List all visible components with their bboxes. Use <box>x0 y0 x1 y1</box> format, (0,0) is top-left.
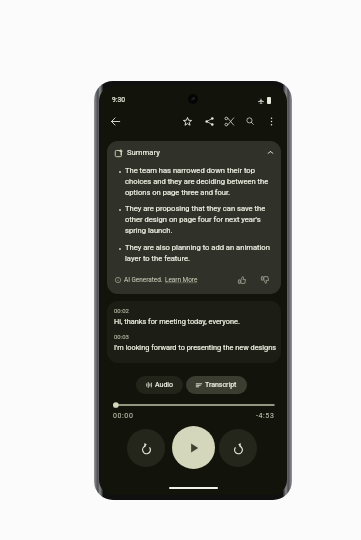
button[interactable]: More options <box>262 112 280 130</box>
staticText: The team has narrowed down their top cho… <box>125 166 276 197</box>
button[interactable]: Share <box>200 112 218 130</box>
staticText: 00:00 <box>113 412 134 420</box>
staticText: I'm looking forward to presenting the ne… <box>114 343 277 352</box>
button[interactable]: Bad response <box>258 273 272 287</box>
button[interactable]: Play <box>172 426 215 469</box>
button[interactable]: Forward 10 seconds <box>219 429 257 467</box>
button[interactable]: Good response <box>235 273 249 287</box>
staticText: Summary <box>127 148 160 157</box>
button[interactable]: Trim <box>220 112 238 130</box>
staticText: 00:02 <box>114 307 129 314</box>
button[interactable]: Audio <box>136 376 183 394</box>
staticText: They are also planning to add an animati… <box>125 243 276 263</box>
staticText: Transcript <box>205 381 237 389</box>
staticText: 00:03 <box>114 333 129 340</box>
button[interactable]: Rewind 10 seconds <box>127 429 165 467</box>
staticText: 9:30 <box>112 96 125 104</box>
staticText: They are proposing that they can save th… <box>125 204 276 235</box>
button[interactable]: Back <box>106 112 124 130</box>
staticText: -4:53 <box>256 412 275 420</box>
button[interactable]: Favourite <box>178 112 196 130</box>
staticText: Hi, thanks for meeting today, everyone. <box>114 317 240 326</box>
button[interactable]: Search <box>241 112 259 130</box>
staticText: AI Generated. <box>124 276 163 284</box>
staticText: Audio <box>155 381 174 389</box>
button[interactable]: Transcript <box>186 376 247 394</box>
button[interactable]: Learn More <box>165 276 198 284</box>
